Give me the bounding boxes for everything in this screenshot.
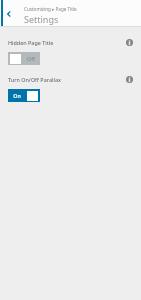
staticText: Settings [24,13,59,25]
staticText: Off [27,55,35,62]
button[interactable]: Toggle off [8,52,40,65]
staticText: On [13,92,21,99]
staticText: Turn On/Off Parallax [8,76,61,83]
button[interactable]: More information about this setting [124,74,135,85]
button[interactable]: More information about this setting [124,37,135,48]
button[interactable]: Back [0,1,18,27]
button[interactable]: Toggle on [8,89,40,102]
staticText: Hidden Page Title [8,39,54,46]
button[interactable]: Customizing ▸ Page Title [24,6,77,25]
staticText: Customizing ▸ Page Title [24,6,77,12]
button[interactable]: Hidden Page Title [0,37,141,65]
button[interactable]: Turn On/Off Parallax [0,74,141,102]
